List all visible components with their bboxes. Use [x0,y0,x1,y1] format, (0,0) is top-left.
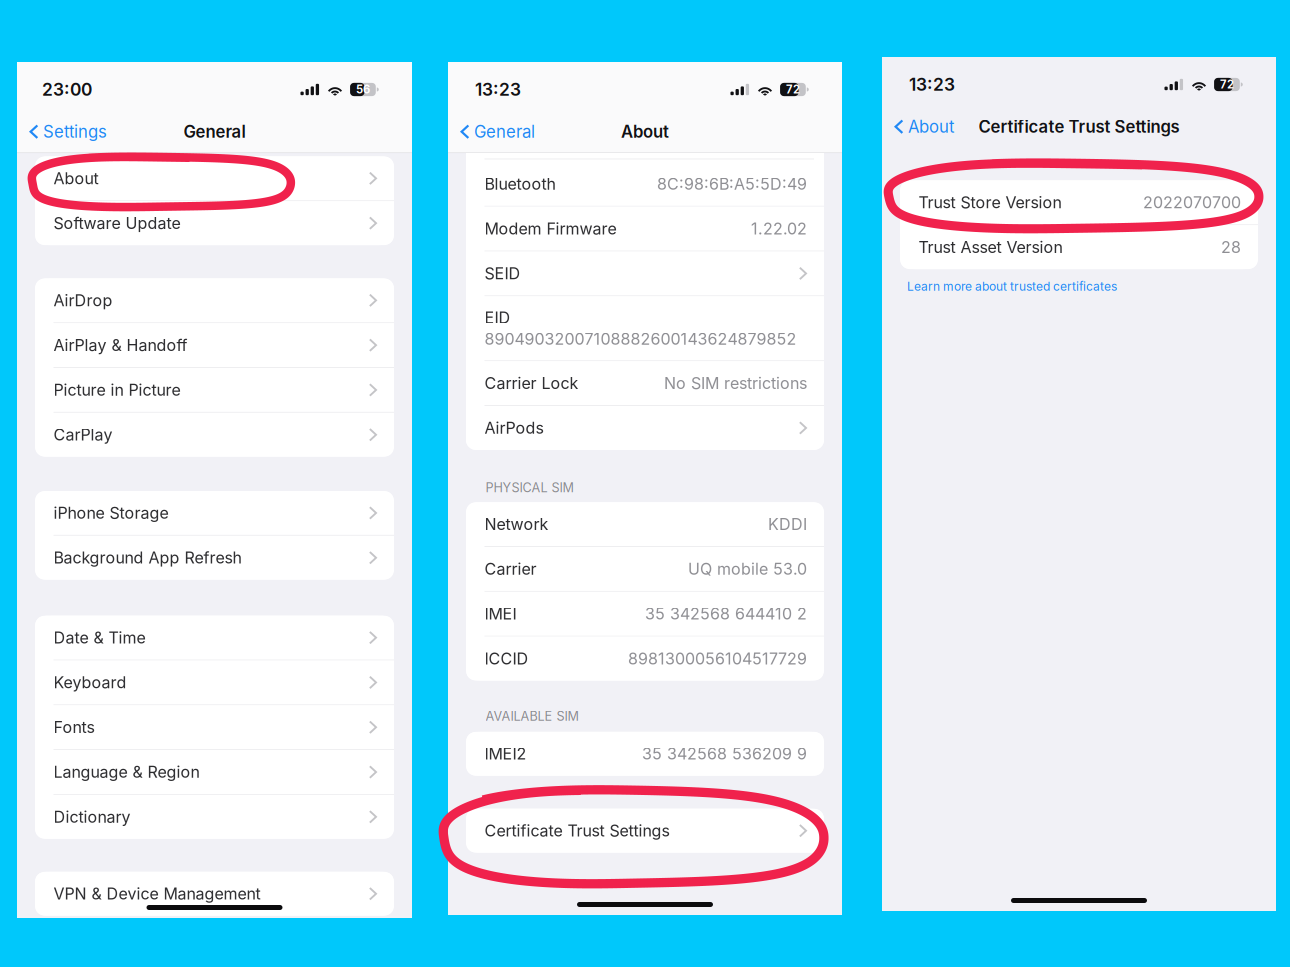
staticText: Learn more about trusted certificates [907,279,1117,294]
button[interactable]: Dictionary [35,795,394,839]
staticText: Network [484,514,548,534]
staticText: 1.22.02 [751,219,807,238]
staticText: General [474,122,535,142]
button[interactable]: Carrier [466,547,824,591]
staticText: Picture in Picture [53,380,180,400]
button[interactable]: EID [466,296,824,360]
staticText: Date & Time [53,628,145,647]
staticText: Carrier Lock [484,373,578,393]
staticText: Settings [43,122,107,142]
staticText: AirPlay & Handoff [53,335,187,355]
staticText: 8C:98:6B:A5:5D:49 [657,174,807,194]
staticText: Language & Region [53,762,199,782]
button[interactable]: About [882,106,964,147]
staticText: Trust Asset Version [918,237,1062,257]
button[interactable]: Picture in Picture [35,368,394,412]
button[interactable]: Fonts [35,705,394,749]
button[interactable]: Network [466,502,824,546]
staticText: About [621,122,669,142]
button[interactable]: Background App Refresh [35,536,394,580]
button[interactable]: Language & Region [35,750,394,794]
staticText: Dictionary [53,807,130,827]
button[interactable]: About [35,156,394,200]
staticText: 13:23 [909,74,955,95]
staticText: 72 [786,83,800,96]
staticText: iPhone Storage [53,503,168,523]
staticText: KDDI [768,514,807,534]
button[interactable]: iPhone Storage [35,491,394,535]
button[interactable]: Trust Asset Version [900,225,1258,269]
staticText: SEID [484,264,520,283]
button[interactable]: Learn more about trusted certificates [882,276,1276,297]
button[interactable]: Software Update [35,201,394,245]
staticText: About [53,169,98,188]
staticText: AVAILABLE SIM [485,708,578,724]
staticText: 72 [1220,78,1234,91]
button[interactable]: AirPods [466,406,824,450]
button[interactable]: IMEI2 [466,732,824,776]
button[interactable]: Modem Firmware [466,207,824,251]
button[interactable]: Bluetooth [466,162,824,206]
button[interactable]: Keyboard [35,660,394,704]
button[interactable]: ICCID [466,637,824,680]
button[interactable]: General [448,111,545,152]
button[interactable]: IMEI [466,592,824,636]
staticText: Trust Store Version [918,193,1061,212]
button[interactable]: SEID [466,251,824,295]
button[interactable]: Certificate Trust Settings [466,809,824,853]
staticText: PHYSICAL SIM [485,480,573,495]
staticText: Fonts [53,718,94,737]
staticText: No SIM restrictions [664,373,807,393]
staticText: 89049032007108882600143624879852 [484,329,796,349]
button[interactable]: Date & Time [35,616,394,660]
staticText: ICCID [484,649,528,668]
staticText: 13:23 [475,79,521,100]
button[interactable]: Settings [17,111,117,152]
staticText: EID [484,308,510,327]
button[interactable]: AirPlay & Handoff [35,323,394,367]
staticText: IMEI2 [484,744,526,763]
button[interactable]: VPN & Device Management [35,872,394,916]
staticText: 23:00 [42,79,92,100]
staticText: AirDrop [53,291,112,310]
staticText: Certificate Trust Settings [978,117,1179,137]
staticText: 35 342568 536209 9 [642,744,807,763]
staticText: About [908,117,954,137]
staticText: Keyboard [53,673,126,692]
button[interactable]: Trust Store Version [900,180,1258,224]
staticText: 8981300056104517729 [628,649,807,668]
staticText: Bluetooth [484,174,555,194]
button[interactable]: AirDrop [35,278,394,322]
staticText: 56 [356,83,370,96]
button[interactable]: Carrier Lock [466,361,824,405]
staticText: IMEI [484,604,516,623]
staticText: Background App Refresh [53,548,241,567]
staticText: Modem Firmware [484,219,616,238]
staticText: AirPods [484,418,543,438]
staticText: Software Update [53,213,180,233]
staticText: 35 342568 644410 2 [645,604,807,623]
staticText: VPN & Device Management [53,884,260,903]
staticText: 28 [1221,237,1241,257]
staticText: Carrier [484,559,536,579]
staticText: CarPlay [53,425,112,444]
staticText: General [183,122,245,142]
staticText: Certificate Trust Settings [484,821,669,840]
button[interactable]: CarPlay [35,413,394,457]
staticText: 2022070700 [1143,193,1241,212]
staticText: UQ mobile 53.0 [688,559,807,579]
